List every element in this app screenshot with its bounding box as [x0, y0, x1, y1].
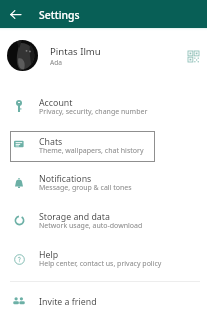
staticText: Invite a friend — [39, 296, 97, 308]
button[interactable]: Storage and data — [0, 206, 207, 237]
staticText: Help center, contact us, privacy policy — [39, 259, 162, 269]
button[interactable]: Invite a friend — [0, 285, 207, 316]
staticText: Ada — [50, 58, 62, 67]
staticText: Chats — [39, 136, 63, 148]
button[interactable]: Notifications — [0, 168, 207, 199]
staticText: Message, group & call tones — [39, 183, 132, 193]
button[interactable]: Pintas Ilmu — [0, 35, 207, 77]
button[interactable]: Chats — [10, 131, 155, 162]
staticText: Privacy, security, change number — [39, 107, 148, 117]
staticText: Theme, wallpapers, chat history — [39, 146, 144, 156]
staticText: Notifications — [39, 173, 92, 185]
staticText: Settings — [39, 8, 80, 22]
staticText: Storage and data — [39, 211, 110, 223]
button[interactable]: QR code — [183, 46, 204, 67]
staticText: Pintas Ilmu — [50, 45, 101, 58]
button[interactable]: Account — [0, 92, 207, 123]
staticText: Account — [39, 97, 73, 109]
staticText: Network usage, auto-download — [39, 221, 143, 231]
staticText: Help — [39, 249, 59, 261]
button[interactable]: Back — [0, 0, 28, 28]
button[interactable]: Help — [0, 244, 207, 275]
